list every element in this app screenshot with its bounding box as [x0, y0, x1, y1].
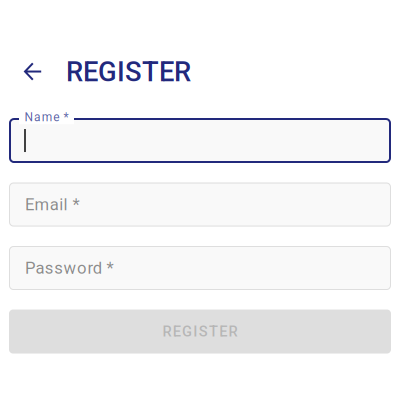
button[interactable]: REGISTER	[9, 309, 391, 353]
staticText: Name *	[24, 110, 68, 124]
button[interactable]: Back	[24, 62, 42, 81]
staticText: REGISTER	[162, 323, 238, 340]
button[interactable]: Name *	[9, 112, 391, 163]
staticText: REGISTER	[66, 56, 191, 88]
button[interactable]: Password *	[9, 246, 391, 290]
staticText: Email *	[25, 195, 79, 214]
button[interactable]: Email *	[9, 182, 391, 226]
staticText: Password *	[25, 258, 114, 278]
